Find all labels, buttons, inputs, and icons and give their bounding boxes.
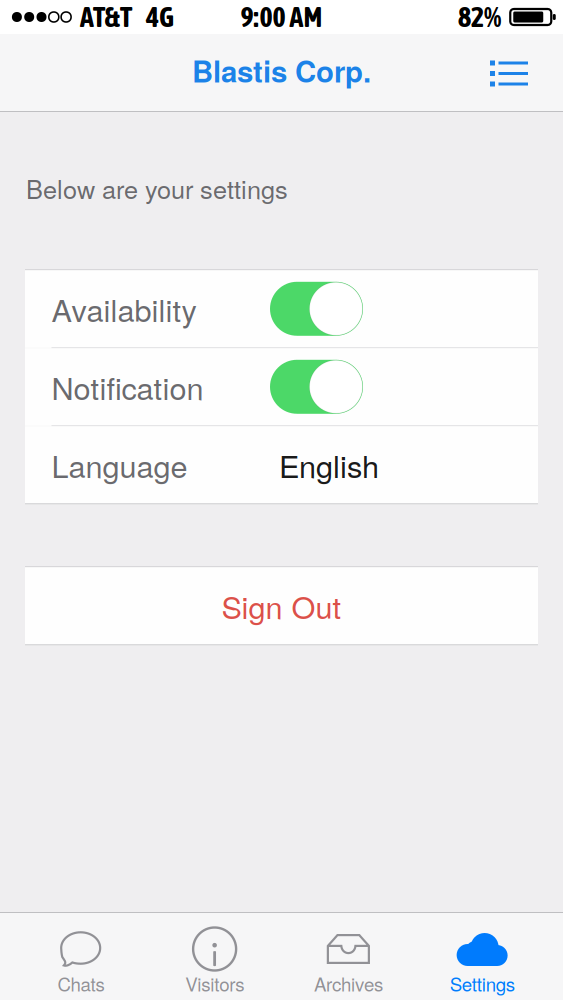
- staticText: 82%: [458, 1, 501, 33]
- staticText: Settings: [450, 970, 515, 997]
- button[interactable]: Visitors: [148, 912, 282, 1000]
- button[interactable]: Availability: [25, 270, 538, 347]
- button[interactable]: Menu: [471, 41, 547, 103]
- staticText: Archives: [314, 970, 383, 997]
- button[interactable]: Archives: [281, 912, 415, 1000]
- button[interactable]: Chats: [14, 912, 148, 1000]
- button[interactable]: Language: [25, 426, 538, 503]
- staticText: Availability: [51, 287, 196, 331]
- staticText: Language: [51, 443, 187, 487]
- staticText: Chats: [57, 970, 104, 997]
- staticText: 9:00 AM: [240, 1, 322, 33]
- staticText: English: [279, 443, 379, 487]
- staticText: 4G: [146, 1, 174, 33]
- staticText: Sign Out: [221, 584, 341, 628]
- button[interactable]: Sign Out: [25, 567, 538, 644]
- button[interactable]: Settings: [415, 912, 549, 1000]
- button[interactable]: Notification: [25, 348, 538, 425]
- staticText: Below are your settings: [26, 170, 288, 206]
- staticText: AT&T: [80, 1, 132, 33]
- staticText: Notification: [51, 365, 203, 409]
- staticText: Blastis Corp.: [192, 49, 371, 91]
- staticText: Visitors: [185, 970, 244, 997]
